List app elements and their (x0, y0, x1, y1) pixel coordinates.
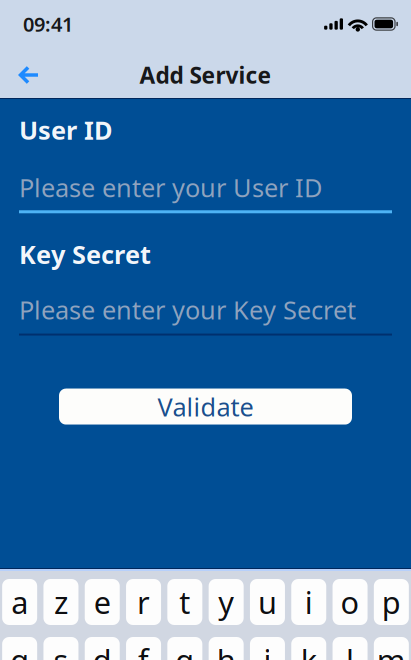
button[interactable]: z (43, 579, 78, 625)
button[interactable]: f (126, 637, 161, 660)
staticText: Add Service (139, 60, 271, 90)
staticText: p (382, 582, 401, 622)
staticText: i (305, 582, 313, 622)
staticText: Please enter your User ID (19, 171, 322, 204)
staticText: User ID (19, 113, 113, 147)
button[interactable]: t (167, 579, 202, 625)
button[interactable]: o (333, 579, 368, 625)
button[interactable]: g (167, 637, 202, 660)
staticText: t (179, 582, 190, 622)
staticText: m (377, 640, 406, 660)
button[interactable]: r (126, 579, 161, 625)
button[interactable]: j (250, 637, 285, 660)
staticText: Key Secret (19, 237, 151, 271)
button[interactable]: i (291, 579, 326, 625)
staticText: a (11, 582, 28, 622)
button[interactable]: a (2, 579, 37, 625)
staticText: r (137, 582, 150, 622)
button[interactable]: Back (8, 51, 48, 95)
staticText: o (341, 582, 360, 622)
button[interactable]: m (374, 637, 409, 660)
staticText: g (175, 640, 194, 660)
button[interactable]: y (209, 579, 244, 625)
button[interactable]: e (85, 579, 120, 625)
staticText: Validate (157, 390, 253, 423)
staticText: j (263, 640, 271, 660)
button[interactable]: q (2, 637, 37, 660)
button[interactable]: l (333, 637, 368, 660)
staticText: u (258, 582, 277, 622)
staticText: 09:41 (23, 11, 73, 37)
staticText: e (94, 582, 111, 622)
button[interactable]: s (43, 637, 78, 660)
staticText: l (346, 640, 354, 660)
staticText: h (217, 640, 236, 660)
staticText: q (10, 640, 29, 660)
staticText: k (301, 640, 317, 660)
button[interactable]: p (374, 579, 409, 625)
button[interactable]: k (291, 637, 326, 660)
staticText: y (218, 582, 234, 622)
staticText: Please enter your Key Secret (19, 293, 356, 326)
staticText: f (138, 640, 149, 660)
staticText: d (93, 640, 112, 660)
button[interactable]: u (250, 579, 285, 625)
staticText: z (54, 582, 68, 622)
button[interactable]: h (209, 637, 244, 660)
button[interactable]: d (85, 637, 120, 660)
staticText: s (53, 640, 68, 660)
button[interactable]: Validate (59, 389, 352, 425)
